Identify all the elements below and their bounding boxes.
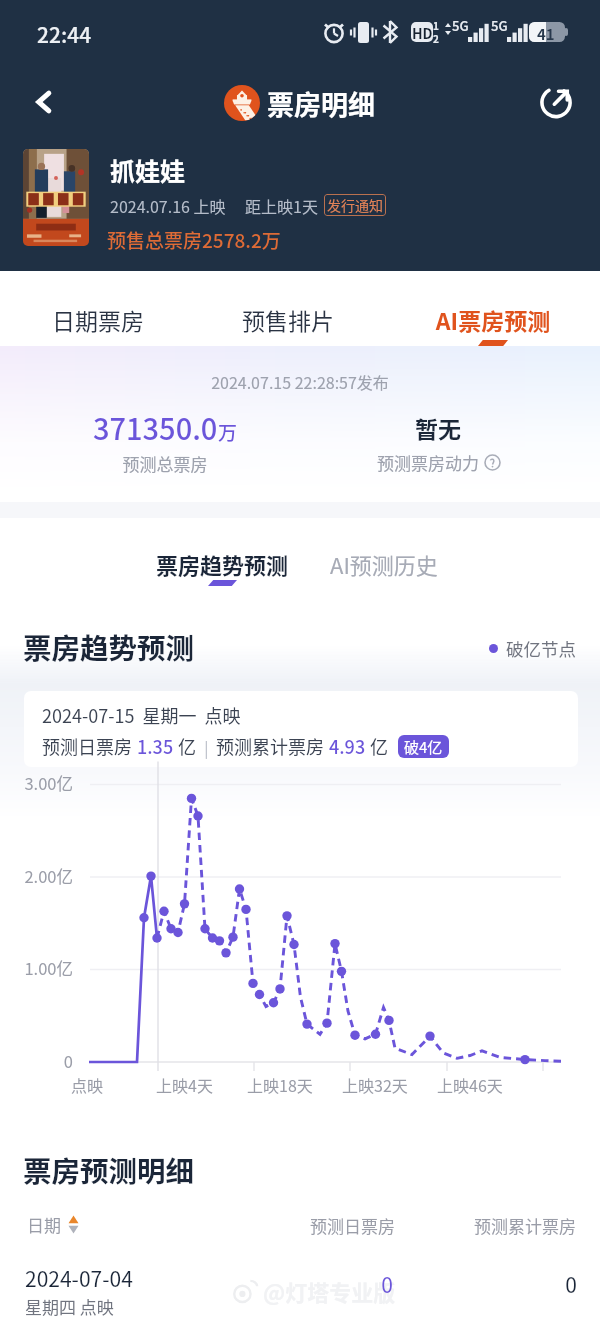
staticText: AI预测历史 (330, 548, 438, 580)
button[interactable]: 日期票房 (30, 271, 166, 346)
staticText: 2 (433, 31, 439, 45)
staticText: 2024.07.15 22:28:57发布 (0, 370, 600, 393)
button[interactable]: AI预测历史 (318, 540, 450, 580)
staticText: 1.00亿 (0, 956, 73, 980)
staticText: 上映46天 (437, 1073, 503, 1096)
staticText: 预测累计票房 (375, 1213, 576, 1238)
staticText: 4.93 (329, 733, 366, 759)
staticText: 1.35 (137, 733, 174, 759)
staticText: 预售排片 (220, 303, 356, 336)
staticText: 票房趋势预测 (156, 548, 289, 580)
staticText: | (197, 735, 216, 758)
staticText: 暂无 (338, 411, 538, 444)
staticText: HD (412, 23, 433, 43)
staticText: 2024.07.16 上映 (110, 194, 226, 217)
staticText: 上映18天 (247, 1073, 313, 1096)
staticText: 2024-07-04 (25, 1263, 133, 1293)
staticText: 破4亿 (404, 736, 443, 758)
staticText: 上映32天 (342, 1073, 408, 1096)
staticText: 预测累计票房 (216, 733, 329, 759)
staticText: 破亿节点 (506, 636, 576, 661)
staticText: 预测日票房 (42, 733, 137, 759)
staticText: 预测总票房 (65, 451, 265, 476)
staticText: 距上映1天 (245, 194, 318, 217)
staticText: 2.00亿 (0, 864, 73, 888)
button[interactable]: AI票房预测 (425, 271, 561, 346)
button[interactable]: 日期 (27, 1212, 79, 1237)
staticText: 371350.0 (93, 406, 218, 448)
staticText: 预测日票房 (195, 1213, 395, 1238)
staticText: 0 (0, 1049, 73, 1073)
button[interactable]: Back (24, 82, 64, 122)
staticText: 发行通知 (327, 195, 383, 215)
button[interactable]: 2024-07-04 (0, 1257, 600, 1320)
staticText: 上映4天 (156, 1073, 213, 1096)
staticText: 预测票房动力 (377, 450, 479, 475)
staticText: 3.00亿 (0, 771, 73, 795)
staticText: 亿 (174, 733, 197, 759)
button[interactable]: 预售排片 (220, 271, 356, 346)
staticText: 0 (375, 1269, 577, 1299)
staticText: 预售总票房2578.2万 (107, 226, 281, 254)
staticText: 5G (491, 16, 508, 35)
staticText: 22:44 (37, 19, 92, 49)
staticText: 星期四 点映 (25, 1294, 114, 1319)
staticText: 41 (537, 23, 555, 45)
button[interactable]: 票房趋势预测 (144, 540, 301, 586)
staticText: 日期 (27, 1212, 61, 1237)
staticText: 票房预测明细 (23, 1149, 195, 1190)
staticText: 票房明细 (267, 84, 375, 123)
staticText: @灯塔专业版 (263, 1275, 396, 1307)
staticText: 点映 (71, 1073, 104, 1096)
staticText: 抓娃娃 (110, 152, 186, 188)
staticText: 5G (452, 16, 469, 35)
staticText: 万 (218, 418, 238, 446)
staticText: 1 (433, 18, 439, 32)
button[interactable]: Share (536, 81, 576, 121)
staticText: 亿 (366, 733, 389, 759)
staticText: 票房趋势预测 (23, 626, 195, 667)
staticText: 日期票房 (30, 303, 166, 336)
staticText: 0 (195, 1269, 393, 1299)
staticText: 2024-07-15 星期一 点映 (42, 702, 241, 728)
staticText: AI票房预测 (425, 303, 561, 336)
